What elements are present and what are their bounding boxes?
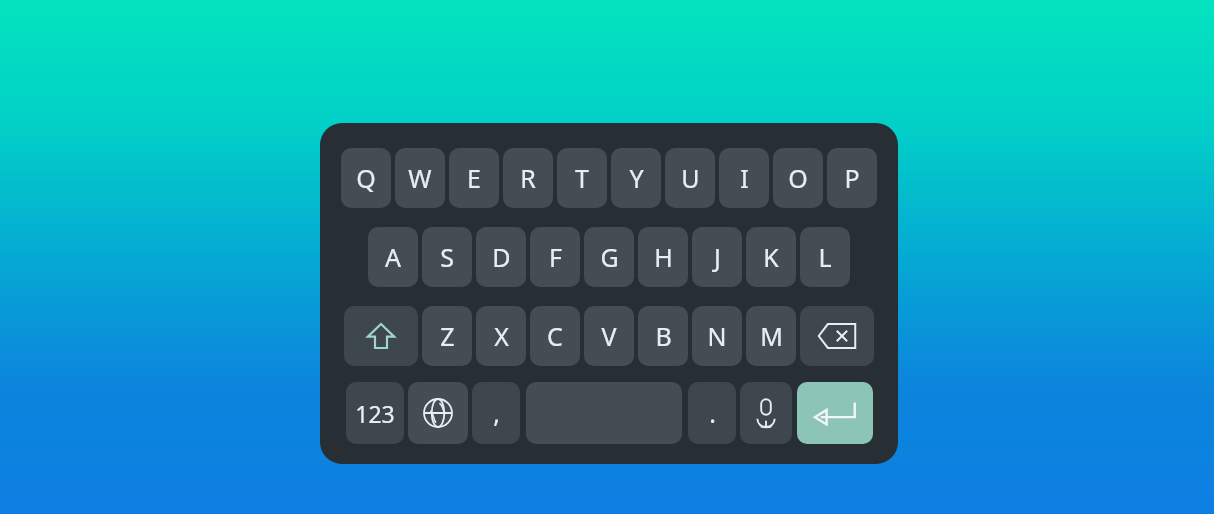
button[interactable]: Q — [341, 148, 391, 208]
button[interactable]: N — [692, 306, 742, 366]
button[interactable]: J — [692, 227, 742, 287]
staticText: . — [709, 396, 716, 430]
staticText: Z — [440, 319, 455, 353]
button[interactable]: W — [395, 148, 445, 208]
staticText: Q — [356, 161, 376, 195]
button[interactable]: B — [638, 306, 688, 366]
staticText: E — [467, 161, 481, 195]
button[interactable]: K — [746, 227, 796, 287]
staticText: H — [654, 240, 673, 274]
button[interactable]: Voice input — [740, 382, 792, 444]
button[interactable]: U — [665, 148, 715, 208]
staticText: K — [763, 240, 779, 274]
staticText: B — [655, 319, 672, 353]
staticText: S — [440, 240, 454, 274]
button[interactable]: Y — [611, 148, 661, 208]
staticText: C — [547, 319, 563, 353]
button[interactable]: G — [584, 227, 634, 287]
staticText: M — [760, 319, 783, 353]
staticText: D — [492, 240, 511, 274]
button[interactable]: D — [476, 227, 526, 287]
staticText: I — [740, 161, 749, 195]
button[interactable]: , — [472, 382, 520, 444]
button[interactable]: O — [773, 148, 823, 208]
button[interactable]: A — [368, 227, 418, 287]
staticText: N — [707, 319, 727, 353]
button[interactable]: E — [449, 148, 499, 208]
button[interactable]: S — [422, 227, 472, 287]
button[interactable]: X — [476, 306, 526, 366]
button[interactable]: 123 — [346, 382, 404, 444]
staticText: T — [575, 161, 589, 195]
button[interactable]: L — [800, 227, 850, 287]
staticText: L — [818, 240, 832, 274]
button[interactable]: . — [688, 382, 736, 444]
button[interactable]: R — [503, 148, 553, 208]
staticText: X — [494, 319, 509, 353]
button[interactable]: P — [827, 148, 877, 208]
button[interactable]: H — [638, 227, 688, 287]
staticText: U — [681, 161, 700, 195]
button[interactable]: Backspace — [800, 306, 874, 366]
button[interactable]: V — [584, 306, 634, 366]
button[interactable]: T — [557, 148, 607, 208]
button[interactable]: F — [530, 227, 580, 287]
staticText: W — [408, 161, 432, 195]
staticText: V — [601, 319, 617, 353]
staticText: F — [549, 240, 562, 274]
staticText: , — [493, 396, 500, 430]
staticText: A — [385, 240, 401, 274]
button[interactable]: Change keyboard language — [408, 382, 468, 444]
staticText: J — [714, 240, 721, 274]
button[interactable]: C — [530, 306, 580, 366]
button[interactable]: Z — [422, 306, 472, 366]
button[interactable]: M — [746, 306, 796, 366]
button[interactable]: Enter — [797, 382, 873, 444]
staticText: R — [520, 161, 536, 195]
staticText: Y — [629, 161, 644, 195]
button[interactable]: Shift — [344, 306, 418, 366]
staticText: 123 — [355, 398, 395, 429]
staticText: G — [600, 240, 619, 274]
button[interactable]: I — [719, 148, 769, 208]
staticText: O — [788, 161, 808, 195]
staticText: P — [844, 161, 860, 195]
